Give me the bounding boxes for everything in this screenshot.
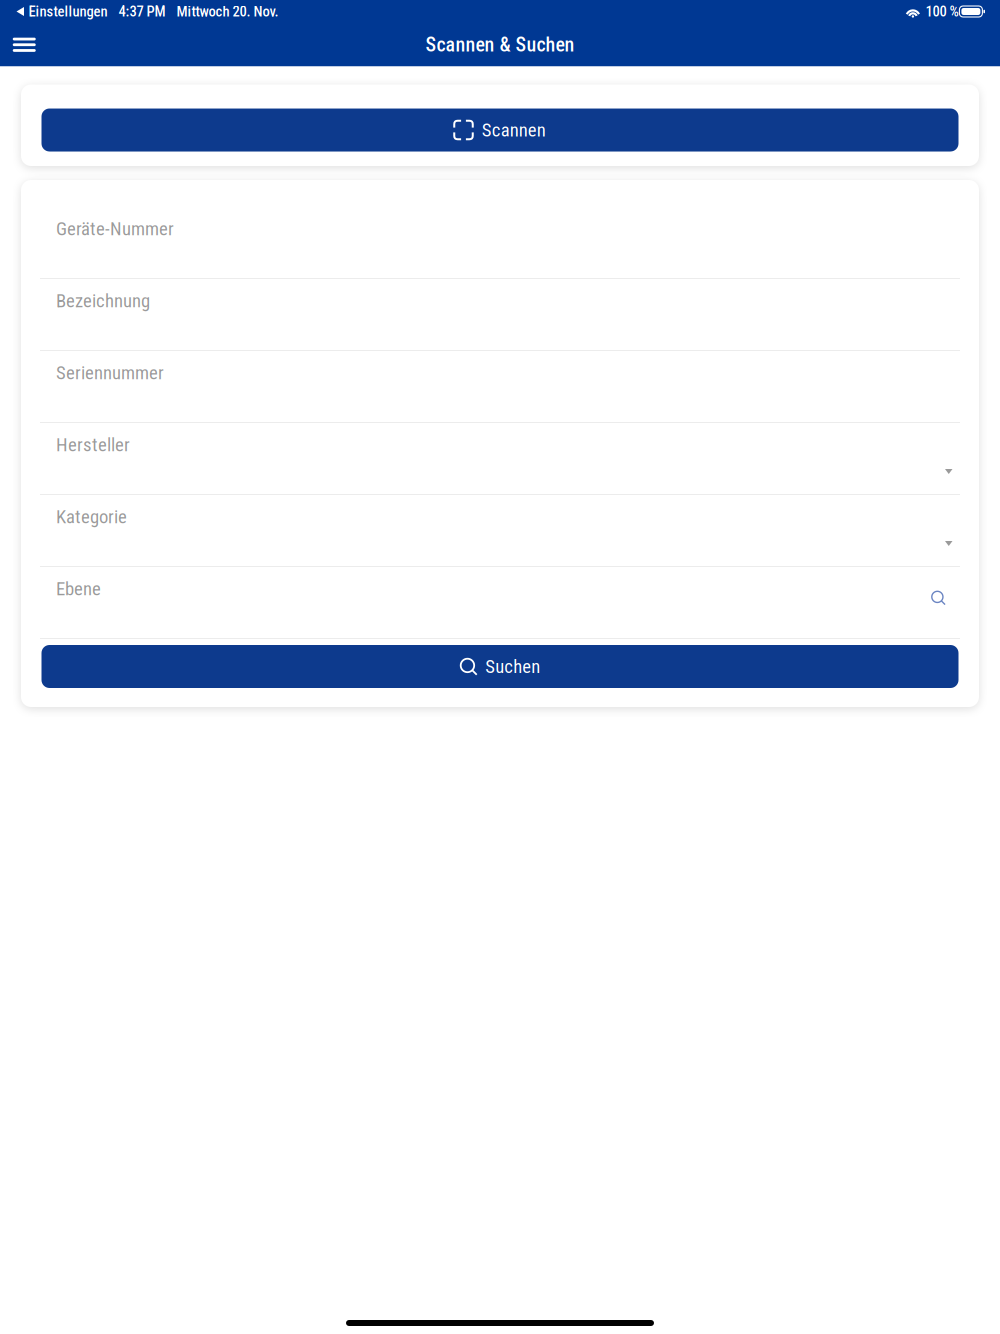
staticText: Suchen	[485, 656, 540, 677]
staticText: Bezeichnung	[56, 290, 150, 312]
staticText: Einstellungen	[28, 3, 107, 20]
button[interactable]: Suchen	[41, 645, 958, 688]
staticText: Scannen	[482, 119, 546, 141]
staticText: Seriennummer	[56, 362, 164, 384]
staticText: Geräte-Nummer	[56, 218, 174, 240]
staticText: 100 %	[925, 3, 958, 20]
staticText: Ebene	[56, 578, 101, 600]
button[interactable]: Scannen	[41, 108, 958, 151]
staticText: Mittwoch 20. Nov.	[176, 3, 278, 20]
staticText: 4:37 PM	[118, 3, 165, 20]
staticText: Kategorie	[56, 506, 127, 528]
button[interactable]: Menu	[0, 23, 48, 66]
staticText: Scannen & Suchen	[425, 33, 574, 56]
staticText: Hersteller	[56, 434, 130, 456]
